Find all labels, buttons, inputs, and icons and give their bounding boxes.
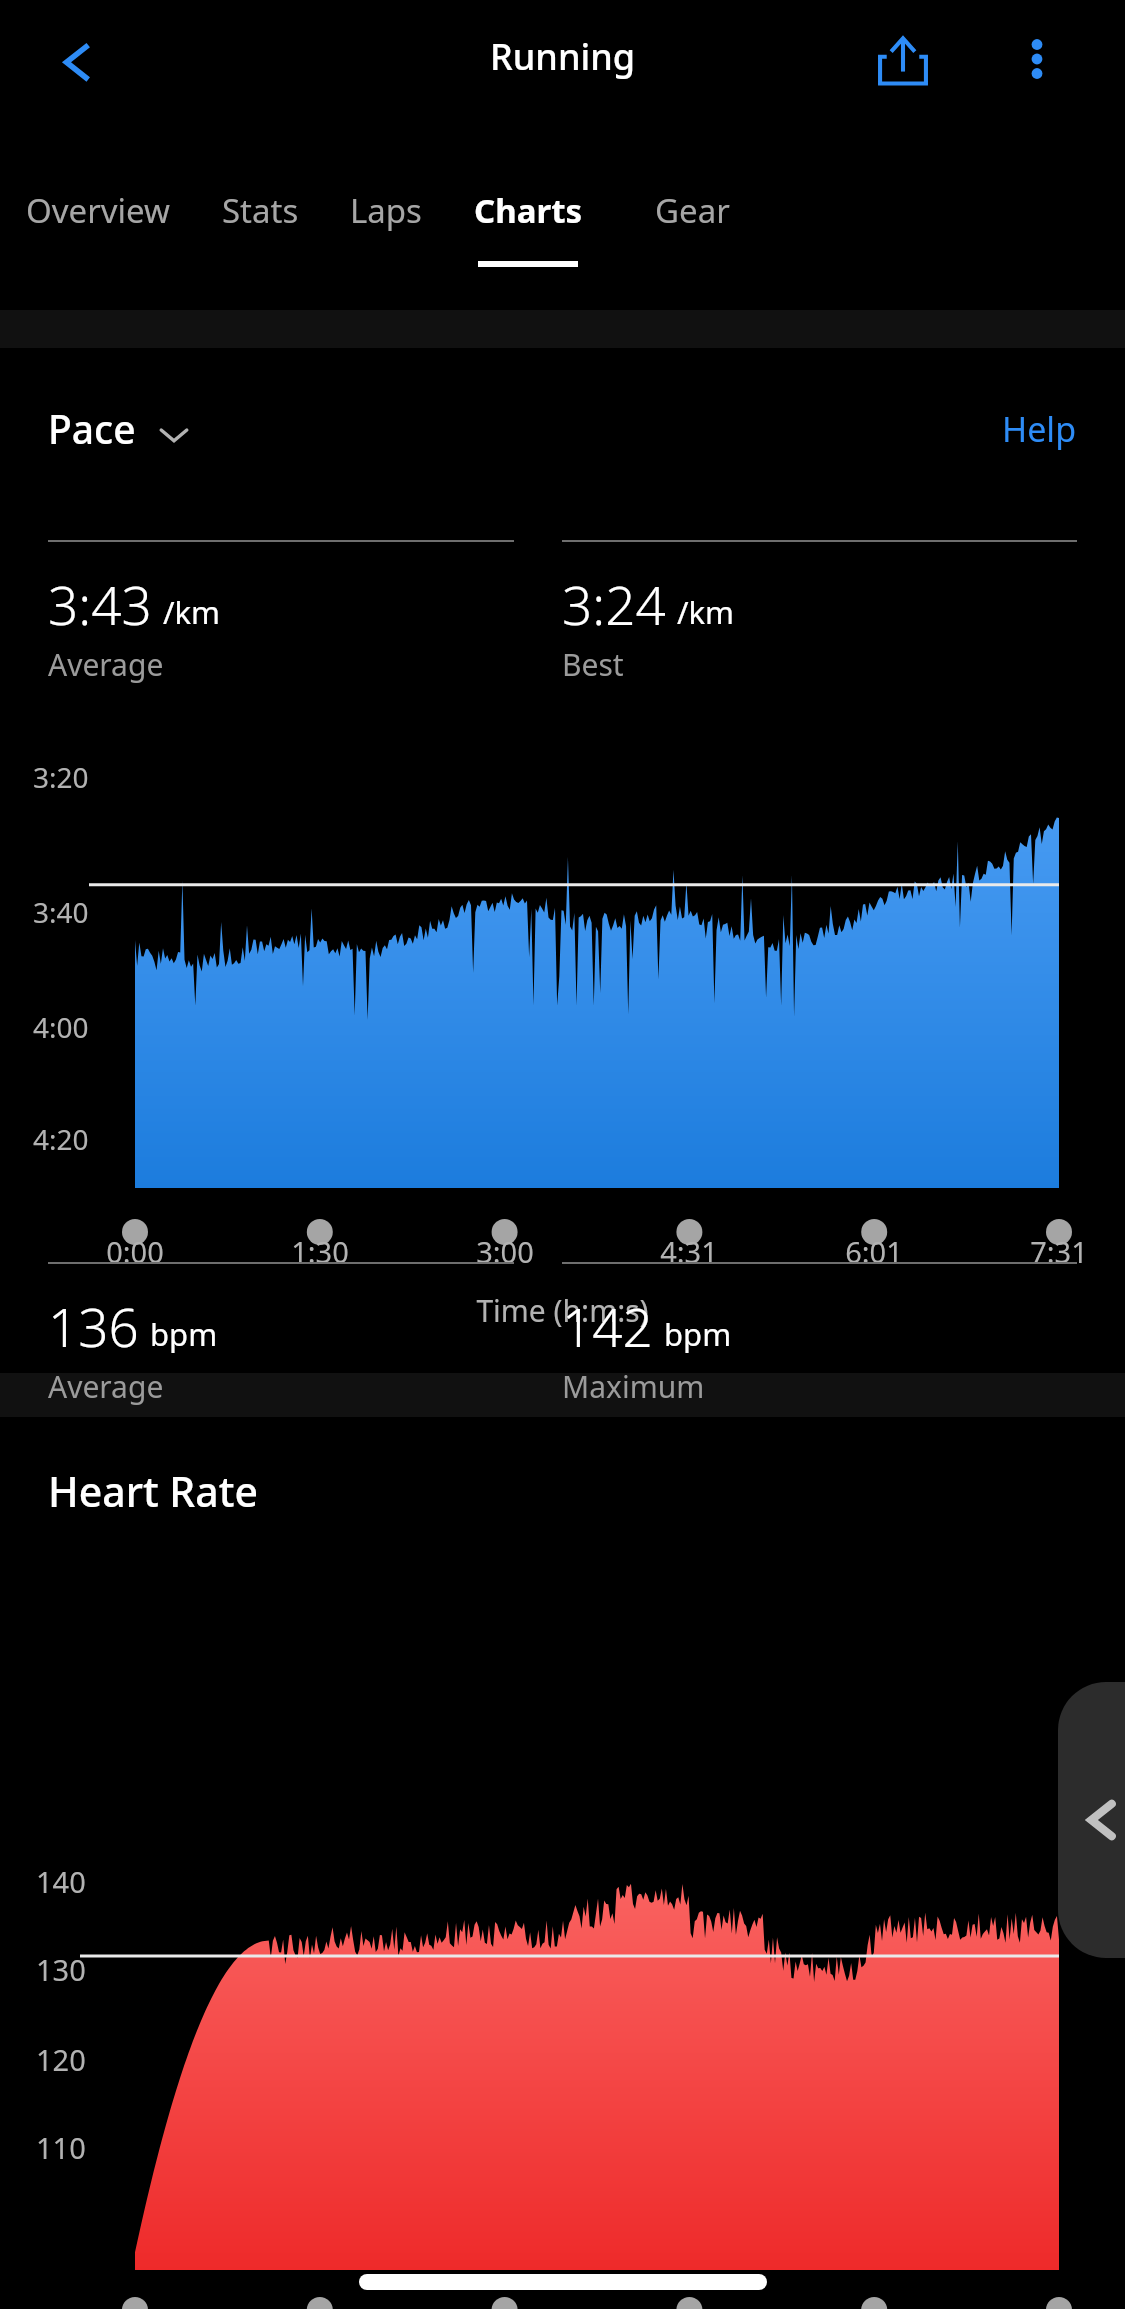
staticText: 3:20 [33,758,89,796]
button[interactable]: Pace [48,402,194,455]
staticText: Charts [474,188,583,233]
staticText: 130 [36,1950,86,1989]
button[interactable]: Charts [454,120,602,300]
staticText: 136 [48,1290,139,1362]
staticText: 120 [36,2040,86,2079]
staticText: Pace [48,402,136,455]
staticText: Average [48,1366,164,1407]
button[interactable]: Laps [326,120,446,300]
staticText: Gear [655,188,730,233]
staticText: Time (h:m:s) [0,1290,1125,1331]
staticText: 3:40 [33,893,89,931]
staticText: 0:00 [75,1232,195,1271]
staticText: bpm [664,1313,732,1355]
staticText: /km [677,591,735,633]
staticText: Heart Rate [48,1463,258,1519]
button[interactable]: Back [46,28,112,94]
button[interactable]: Overview [6,120,189,300]
staticText: Stats [222,188,299,233]
staticText: 142 [562,1290,653,1362]
staticText: Help [1002,406,1077,452]
staticText: 7:31 [999,1232,1119,1271]
staticText: 110 [36,2128,86,2167]
button[interactable]: Share [866,22,940,96]
staticText: 4:20 [33,1120,89,1158]
staticText: 1:30 [260,1232,380,1271]
staticText: 4:31 [629,1232,749,1271]
staticText: 6:01 [814,1232,934,1271]
staticText: Average [48,644,164,685]
button[interactable]: More options [1004,26,1070,92]
staticText: 3:43 [48,568,152,640]
staticText: bpm [150,1313,218,1355]
staticText: 3:00 [445,1232,565,1271]
staticText: 3:24 [562,568,666,640]
staticText: 4:00 [33,1008,89,1046]
staticText: Overview [26,188,170,233]
staticText: Maximum [562,1366,705,1407]
staticText: Laps [350,188,422,233]
staticText: Best [562,644,624,685]
staticText: Running [490,32,636,81]
button[interactable]: Stats [194,120,327,300]
staticText: 140 [36,1862,86,1901]
button[interactable]: Open side panel [1058,1682,1125,1958]
staticText: /km [163,591,221,633]
button[interactable]: Gear [626,120,759,300]
button[interactable]: Help [1002,406,1077,452]
